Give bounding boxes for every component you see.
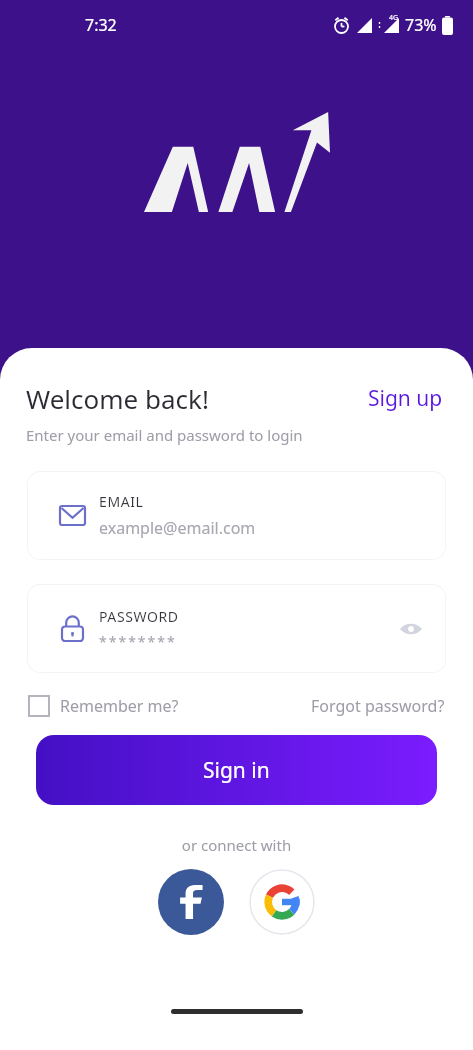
staticText: PASSWORD xyxy=(99,607,179,626)
staticText: EMAIL xyxy=(99,492,144,511)
button[interactable]: Forgot password? xyxy=(311,695,445,717)
staticText: 73% xyxy=(405,14,437,36)
staticText: Welcome back! xyxy=(26,381,209,416)
button[interactable]: Remember me? xyxy=(28,695,179,717)
staticText: Enter your email and password to login xyxy=(26,425,303,445)
button[interactable]: Password xyxy=(27,584,446,673)
button[interactable]: Email xyxy=(27,471,446,560)
staticText: Sign up xyxy=(368,384,443,413)
other: Email xyxy=(60,506,85,525)
staticText: 4G xyxy=(389,13,399,23)
staticText: ******** xyxy=(99,632,177,651)
staticText: Sign in xyxy=(203,756,270,785)
staticText: Remember me? xyxy=(60,695,179,717)
button[interactable]: Sign in with Facebook xyxy=(158,869,224,935)
button[interactable]: Show password xyxy=(394,612,428,646)
button[interactable]: Sign up xyxy=(364,380,447,417)
staticText: example@email.com xyxy=(99,517,256,539)
staticText: 7:32 xyxy=(85,14,117,36)
staticText: or connect with xyxy=(0,835,473,855)
button[interactable]: Sign in xyxy=(36,735,437,805)
staticText: Forgot password? xyxy=(311,695,445,717)
other: Password xyxy=(62,616,83,641)
button[interactable]: Sign in with Google xyxy=(249,869,315,935)
